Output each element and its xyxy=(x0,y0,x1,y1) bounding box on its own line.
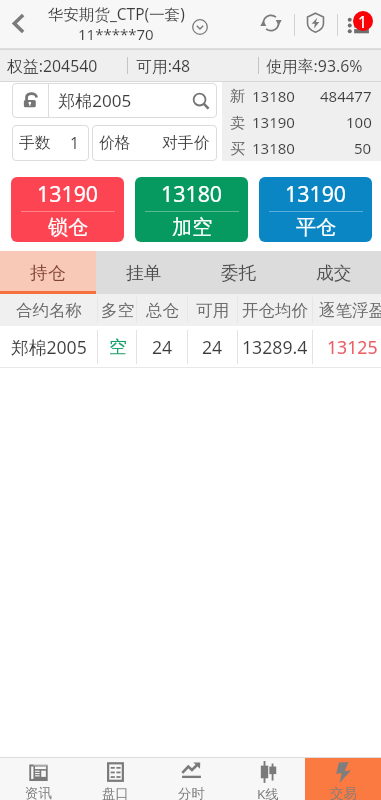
staticText: 权益:204540 xyxy=(7,55,98,77)
button[interactable]: 卖 xyxy=(230,109,372,135)
staticText: 交易 xyxy=(330,785,357,800)
staticText: 华安期货_CTP(一套) xyxy=(48,3,185,24)
staticText: 锁仓 xyxy=(48,215,89,240)
staticText: 13190 xyxy=(37,179,99,208)
staticText: K线 xyxy=(257,785,279,800)
button[interactable]: 委托 xyxy=(191,251,286,294)
button[interactable]: 价格 xyxy=(92,125,217,161)
button[interactable]: 挂单 xyxy=(96,251,191,294)
staticText: 开仓均价 xyxy=(242,300,308,321)
staticText: 买 xyxy=(230,139,246,158)
staticText: 13180 xyxy=(252,86,295,106)
staticText: 郑棉2005 xyxy=(58,89,132,112)
staticText: 13180 xyxy=(252,138,295,158)
staticText: 24 xyxy=(202,335,223,359)
staticText: 价格 xyxy=(99,133,131,153)
staticText: 资讯 xyxy=(25,785,52,800)
staticText: 可用:48 xyxy=(136,55,191,77)
button[interactable]: 盘口 xyxy=(77,757,153,800)
staticText: 成交 xyxy=(316,262,352,284)
button[interactable]: 新 xyxy=(230,82,372,109)
button[interactable]: 13190 xyxy=(11,177,124,242)
staticText: 13289.4 xyxy=(242,335,308,359)
button[interactable]: 手数 xyxy=(12,125,89,161)
staticText: 11*****70 xyxy=(78,24,154,44)
button[interactable]: 权益:204540 xyxy=(0,49,127,82)
button[interactable]: Search xyxy=(184,83,217,118)
staticText: 委托 xyxy=(221,262,257,284)
button[interactable]: Back xyxy=(0,0,37,49)
button[interactable]: 13190 xyxy=(259,177,372,242)
staticText: 持仓 xyxy=(30,262,66,284)
staticText: 合约名称 xyxy=(16,300,82,321)
staticText: 100 xyxy=(346,112,372,132)
staticText: 手数 xyxy=(19,133,51,153)
staticText: 使用率:93.6% xyxy=(266,55,363,77)
staticText: 分时 xyxy=(178,785,205,800)
staticText: 总仓 xyxy=(146,300,179,321)
staticText: 空 xyxy=(109,336,127,358)
button[interactable]: 持仓 xyxy=(0,251,96,294)
button[interactable]: Security xyxy=(296,0,335,49)
staticText: 13180 xyxy=(161,179,223,208)
button[interactable]: Menu xyxy=(342,0,381,49)
button[interactable]: 郑棉2005 xyxy=(0,326,381,368)
staticText: 加空 xyxy=(172,215,213,240)
staticText: 卖 xyxy=(230,113,246,132)
staticText: 新 xyxy=(230,86,246,105)
button[interactable]: 分时 xyxy=(153,757,229,800)
staticText: 平仓 xyxy=(296,215,337,240)
staticText: 24 xyxy=(152,335,173,359)
button[interactable]: Lock xyxy=(12,83,48,118)
staticText: 1 xyxy=(70,132,80,154)
button[interactable]: 成交 xyxy=(286,251,381,294)
button[interactable]: 交易 xyxy=(305,757,381,800)
button[interactable]: K线 xyxy=(229,757,305,800)
staticText: 可用 xyxy=(196,300,229,321)
staticText: 挂单 xyxy=(126,262,162,284)
button[interactable]: Expand xyxy=(188,0,212,49)
staticText: 逐笔浮盈 xyxy=(319,300,381,321)
staticText: 13190 xyxy=(285,179,347,208)
staticText: 484477 xyxy=(320,86,372,106)
staticText: 对手价 xyxy=(162,133,210,153)
button[interactable]: 资讯 xyxy=(0,757,77,800)
staticText: 郑棉2005 xyxy=(11,335,87,359)
staticText: 13125 xyxy=(327,335,378,359)
staticText: 盘口 xyxy=(102,785,129,800)
staticText: 50 xyxy=(354,138,372,158)
button[interactable]: 可用:48 xyxy=(128,49,258,82)
button[interactable]: 使用率:93.6% xyxy=(259,49,372,82)
button[interactable]: 13180 xyxy=(135,177,248,242)
staticText: 1 xyxy=(358,11,368,31)
staticText: 多空 xyxy=(101,300,134,321)
button[interactable]: Refresh xyxy=(251,0,291,49)
button[interactable]: 买 xyxy=(230,135,372,161)
staticText: 13190 xyxy=(252,112,295,132)
